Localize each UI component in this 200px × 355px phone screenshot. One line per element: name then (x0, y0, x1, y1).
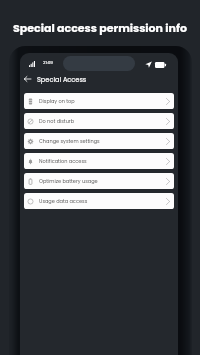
staticText: Notification access (39, 158, 87, 165)
staticText: 21:09 (43, 60, 53, 66)
button[interactable]: Optimize battery usage (24, 173, 174, 189)
staticText: Change system settings (39, 138, 100, 145)
button[interactable]: Usage data access (24, 193, 174, 209)
staticText: Special Access (37, 75, 87, 84)
button[interactable]: Change system settings (24, 133, 174, 149)
button[interactable]: Back (20, 72, 34, 86)
button[interactable]: Do not disturb (24, 113, 174, 129)
staticText: Do not disturb (39, 118, 75, 125)
staticText: Special access permission info (0, 20, 200, 35)
button[interactable]: Display on top (24, 93, 174, 109)
staticText: Optimize battery usage (39, 178, 98, 185)
staticText: Display on top (39, 98, 75, 105)
staticText: Usage data access (39, 198, 88, 205)
button[interactable]: Notification access (24, 153, 174, 169)
